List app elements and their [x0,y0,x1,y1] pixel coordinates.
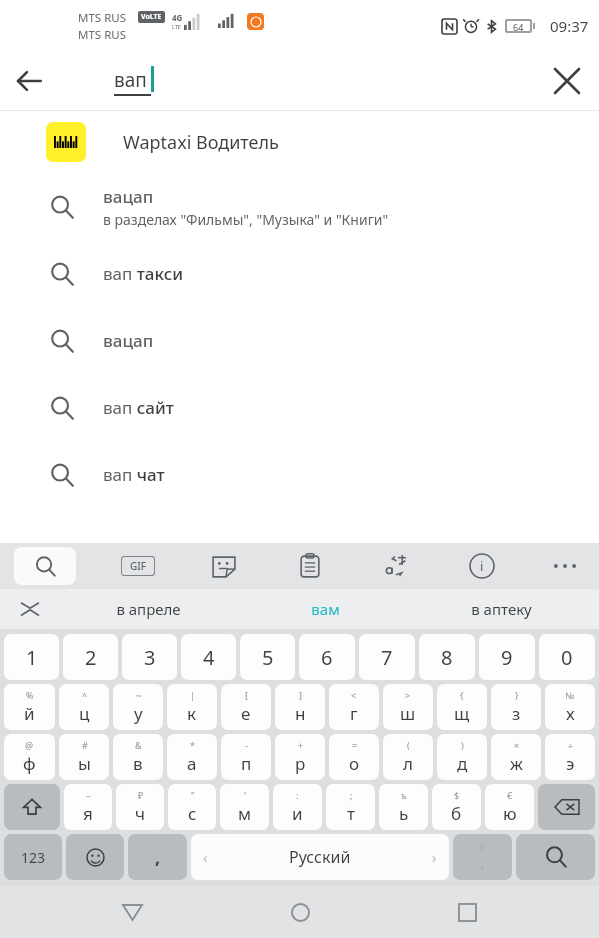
button[interactable]: : [273,784,322,830]
staticText: в апреле [116,599,181,619]
staticText: = [352,739,358,751]
button[interactable]: вацап [0,307,599,374]
button[interactable]: @ [4,734,55,780]
button[interactable]: Shift [4,784,60,830]
button[interactable]: { [437,684,487,730]
staticText: . [480,853,485,873]
button[interactable]: 7 [359,634,415,680]
button[interactable]: GIF [115,543,161,589]
button[interactable]: вацап [0,173,599,240]
button[interactable]: ъ [379,784,428,830]
button[interactable]: 6 [299,634,355,680]
button[interactable]: вам [237,589,413,629]
button[interactable]: " [168,784,216,830]
button[interactable]: Clipboard [287,543,333,589]
staticText: ) [461,739,464,751]
staticText: б [451,802,462,825]
button[interactable]: Home [265,886,335,938]
button[interactable]: Translate [373,543,419,589]
button[interactable]: Clear [535,52,599,110]
button[interactable]: вап сайт [0,374,599,441]
button[interactable]: $ [432,784,481,830]
button[interactable]: } [491,684,541,730]
button[interactable]: ( [383,734,433,780]
button[interactable]: Info [459,543,505,589]
button[interactable]: – [64,784,112,830]
staticText: ' [244,789,247,801]
button[interactable]: ÷ [545,734,595,780]
button[interactable]: 4 [181,634,236,680]
staticText: 3 [144,644,156,671]
button[interactable]: 3 [122,634,177,680]
button[interactable]: - [221,734,271,780]
button[interactable]: в аптеку [413,589,589,629]
button[interactable]: = [329,734,379,780]
button[interactable]: ₽ [116,784,164,830]
staticText: ц [79,702,90,725]
staticText: ~ [136,689,142,701]
staticText: * [190,739,195,751]
staticText: } [515,689,519,701]
button[interactable]: 9 [479,634,535,680]
staticText: 09:37 [550,16,589,36]
staticText: € [507,789,513,801]
staticText: м [238,802,252,825]
button[interactable]: Emoji [66,834,124,880]
button[interactable]: # [59,734,109,780]
button[interactable]: More [545,546,585,586]
button[interactable]: & [113,734,163,780]
button[interactable]: вап чат [0,441,599,508]
button[interactable]: ~ [113,684,163,730]
button[interactable]: Back [0,52,58,110]
staticText: щ [454,702,470,725]
staticText: ь [399,802,409,825]
button[interactable]: 123 [4,834,62,880]
button[interactable]: вап [114,66,535,97]
button[interactable]: € [485,784,534,830]
staticText: х [566,702,575,725]
button[interactable]: , [128,834,187,880]
button[interactable]: + [275,734,325,780]
button[interactable]: × [491,734,541,780]
button[interactable]: ‹ [191,834,449,880]
staticText: ^ [82,689,88,701]
button[interactable]: в апреле [60,589,237,629]
button[interactable]: * [167,734,217,780]
button[interactable]: Stickers [201,543,247,589]
button[interactable]: < [329,684,379,730]
staticText: ф [23,752,36,775]
button[interactable]: !? [453,834,512,880]
staticText: г [350,702,358,725]
button[interactable]: Expand [0,589,60,629]
button[interactable]: Search [516,834,595,880]
button[interactable]: вап такси [0,240,599,307]
button[interactable]: 1 [4,634,59,680]
button[interactable]: % [4,684,55,730]
staticText: вацап [103,329,154,352]
staticText: 1 [26,644,38,671]
button[interactable]: > [383,684,433,730]
button[interactable]: [ [221,684,271,730]
button[interactable]: ; [326,784,375,830]
button[interactable]: 2 [63,634,118,680]
button[interactable]: ^ [59,684,109,730]
button[interactable]: 8 [419,634,475,680]
staticText: ы [78,752,91,775]
button[interactable]: ) [437,734,487,780]
button[interactable]: ' [220,784,269,830]
button[interactable]: | [167,684,217,730]
button[interactable]: Waptaxi Водитель [0,111,599,173]
staticText: 8 [441,644,453,671]
button[interactable]: ] [275,684,325,730]
staticText: с [188,802,197,825]
button[interactable]: Backspace [538,784,595,830]
button[interactable]: № [545,684,595,730]
staticText: вап такси [103,262,184,285]
button[interactable]: Back [97,886,167,938]
staticText: $ [454,789,460,801]
button[interactable]: 5 [240,634,295,680]
button[interactable]: 0 [539,634,595,680]
button[interactable]: Search [14,547,76,585]
staticText: Русский [289,846,351,868]
button[interactable]: Recents [432,886,502,938]
